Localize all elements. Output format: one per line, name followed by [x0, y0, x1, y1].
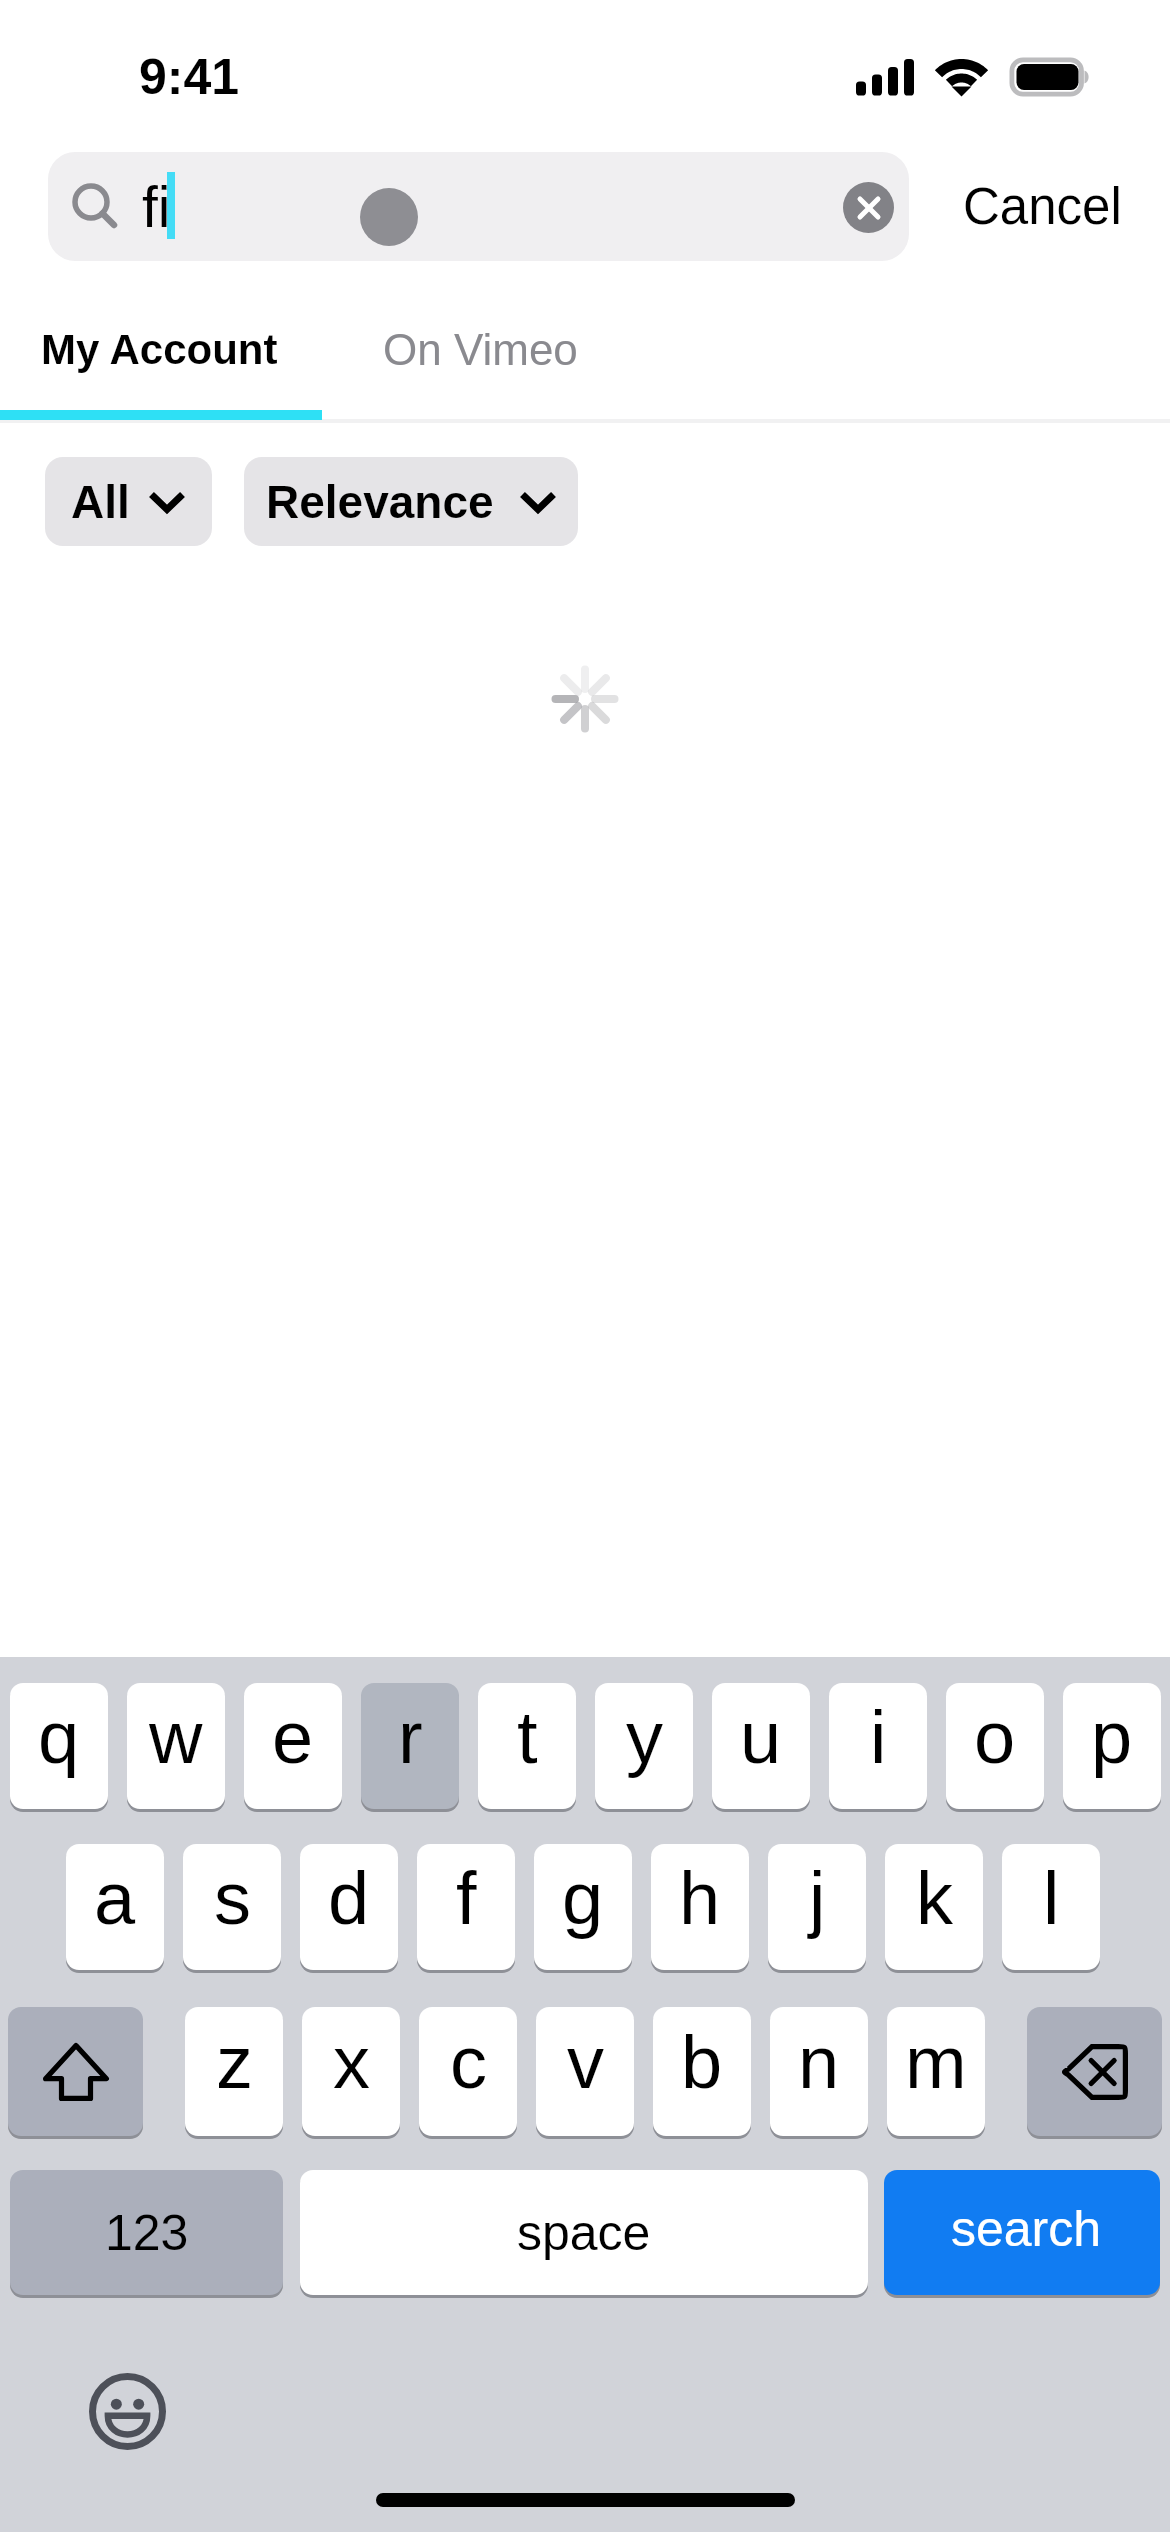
staticText: l: [1043, 1857, 1060, 1940]
staticText: d: [328, 1857, 370, 1940]
button[interactable]: n: [770, 2007, 868, 2136]
button[interactable]: space: [300, 2170, 868, 2295]
staticText: Relevance: [266, 476, 494, 527]
button[interactable]: 123: [10, 2170, 283, 2295]
staticText: b: [681, 2021, 723, 2104]
staticText: z: [216, 2021, 253, 2104]
button[interactable]: q: [10, 1683, 108, 1809]
button[interactable]: r: [361, 1683, 459, 1809]
button[interactable]: Clear search text: [843, 182, 894, 233]
staticText: s: [214, 1857, 251, 1940]
staticText: On Vimeo: [383, 325, 578, 374]
staticText: n: [798, 2021, 840, 2104]
button[interactable]: o: [946, 1683, 1044, 1809]
staticText: m: [905, 2021, 967, 2104]
button[interactable]: h: [651, 1844, 749, 1970]
button[interactable]: e: [244, 1683, 342, 1809]
staticText: All: [71, 476, 130, 527]
button[interactable]: My Account: [0, 294, 320, 404]
staticText: c: [450, 2021, 487, 2104]
staticText: space: [517, 2205, 651, 2261]
button[interactable]: y: [595, 1683, 693, 1809]
staticText: search: [951, 2201, 1102, 2257]
button[interactable]: k: [885, 1844, 983, 1970]
button[interactable]: All: [45, 457, 212, 546]
button[interactable]: d: [300, 1844, 398, 1970]
button[interactable]: Cancel: [938, 158, 1146, 254]
staticText: fi: [142, 175, 171, 239]
button[interactable]: l: [1002, 1844, 1100, 1970]
staticText: h: [679, 1857, 721, 1940]
button[interactable]: x: [302, 2007, 400, 2136]
button[interactable]: w: [127, 1683, 225, 1809]
button[interactable]: On Vimeo: [319, 294, 641, 404]
staticText: y: [626, 1696, 663, 1779]
button[interactable]: u: [712, 1683, 810, 1809]
staticText: j: [809, 1857, 826, 1940]
staticText: k: [916, 1857, 953, 1940]
staticText: r: [398, 1696, 423, 1779]
button[interactable]: i: [829, 1683, 927, 1809]
button[interactable]: j: [768, 1844, 866, 1970]
button[interactable]: b: [653, 2007, 751, 2136]
staticText: o: [974, 1696, 1016, 1779]
staticText: u: [740, 1696, 782, 1779]
button[interactable]: f: [417, 1844, 515, 1970]
staticText: Cancel: [963, 178, 1122, 235]
button[interactable]: p: [1063, 1683, 1161, 1809]
button[interactable]: a: [66, 1844, 164, 1970]
button[interactable]: Backspace: [1027, 2007, 1162, 2136]
button[interactable]: g: [534, 1844, 632, 1970]
staticText: t: [517, 1696, 538, 1779]
button[interactable]: m: [887, 2007, 985, 2136]
button[interactable]: t: [478, 1683, 576, 1809]
staticText: x: [333, 2021, 370, 2104]
button[interactable]: s: [183, 1844, 281, 1970]
button[interactable]: Relevance: [244, 457, 578, 546]
staticText: e: [272, 1696, 314, 1779]
staticText: g: [562, 1857, 604, 1940]
staticText: 9:41: [139, 49, 240, 105]
button[interactable]: c: [419, 2007, 517, 2136]
staticText: 123: [105, 2205, 189, 2261]
staticText: i: [870, 1696, 887, 1779]
button[interactable]: Shift: [8, 2007, 143, 2136]
button[interactable]: fi: [48, 152, 909, 261]
staticText: f: [456, 1857, 477, 1940]
staticText: p: [1091, 1696, 1133, 1779]
staticText: w: [149, 1696, 203, 1779]
staticText: q: [38, 1696, 80, 1779]
staticText: v: [567, 2021, 604, 2104]
button[interactable]: z: [185, 2007, 283, 2136]
button[interactable]: v: [536, 2007, 634, 2136]
staticText: My Account: [41, 326, 278, 373]
staticText: a: [94, 1857, 136, 1940]
button[interactable]: search: [884, 2170, 1160, 2295]
button[interactable]: Emoji keyboard: [89, 2373, 166, 2450]
